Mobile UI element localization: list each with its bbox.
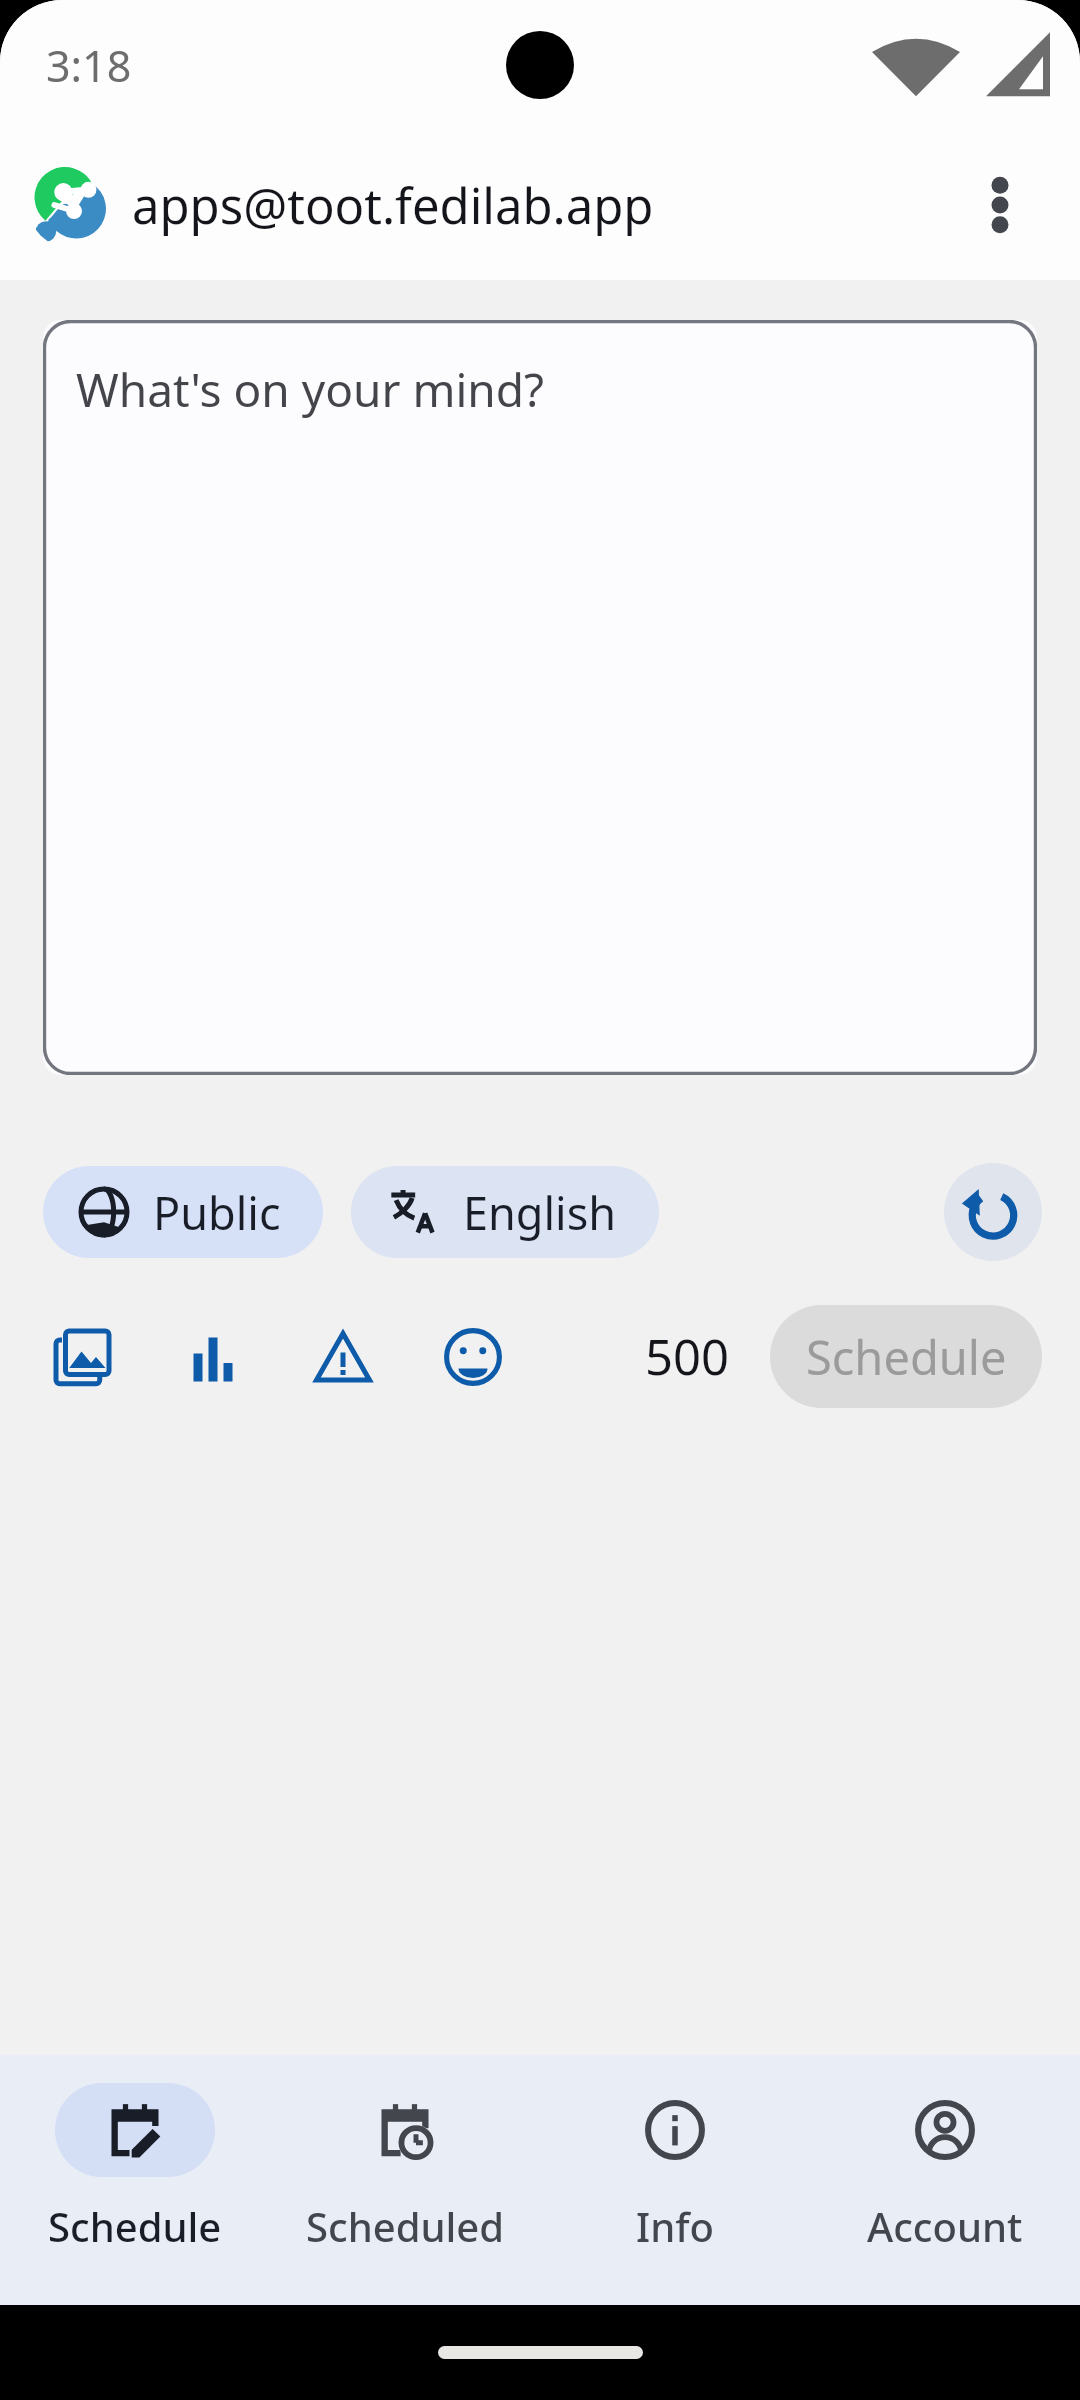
- staticText: Account: [867, 2199, 1023, 2253]
- button[interactable]: Info: [540, 2055, 810, 2253]
- staticText: English: [463, 1182, 617, 1243]
- button[interactable]: Account: [810, 2055, 1080, 2253]
- staticText: Schedule: [48, 2199, 222, 2253]
- staticText: What's on your mind?: [76, 358, 544, 421]
- button[interactable]: More options: [944, 149, 1056, 261]
- button[interactable]: English: [351, 1166, 659, 1258]
- staticText: Public: [153, 1182, 281, 1243]
- button[interactable]: Reset: [944, 1163, 1042, 1261]
- button[interactable]: Public: [43, 1166, 323, 1258]
- staticText: Schedule: [806, 1325, 1007, 1389]
- button[interactable]: Account avatar: [28, 162, 114, 248]
- button[interactable]: What's on your mind?: [43, 320, 1037, 1075]
- button[interactable]: Insert emoji: [430, 1314, 516, 1400]
- staticText: Scheduled: [306, 2199, 505, 2253]
- button[interactable]: Scheduled: [270, 2055, 540, 2253]
- button[interactable]: Add poll: [170, 1314, 256, 1400]
- button[interactable]: Schedule: [770, 1305, 1042, 1408]
- staticText: Info: [636, 2199, 714, 2253]
- staticText: 3:18: [46, 36, 132, 95]
- staticText: 500: [645, 1323, 730, 1390]
- button[interactable]: Schedule: [0, 2055, 270, 2253]
- staticText: apps@toot.fedilab.app: [132, 172, 654, 239]
- button[interactable]: Content warning: [300, 1314, 386, 1400]
- button[interactable]: Add media: [40, 1314, 126, 1400]
